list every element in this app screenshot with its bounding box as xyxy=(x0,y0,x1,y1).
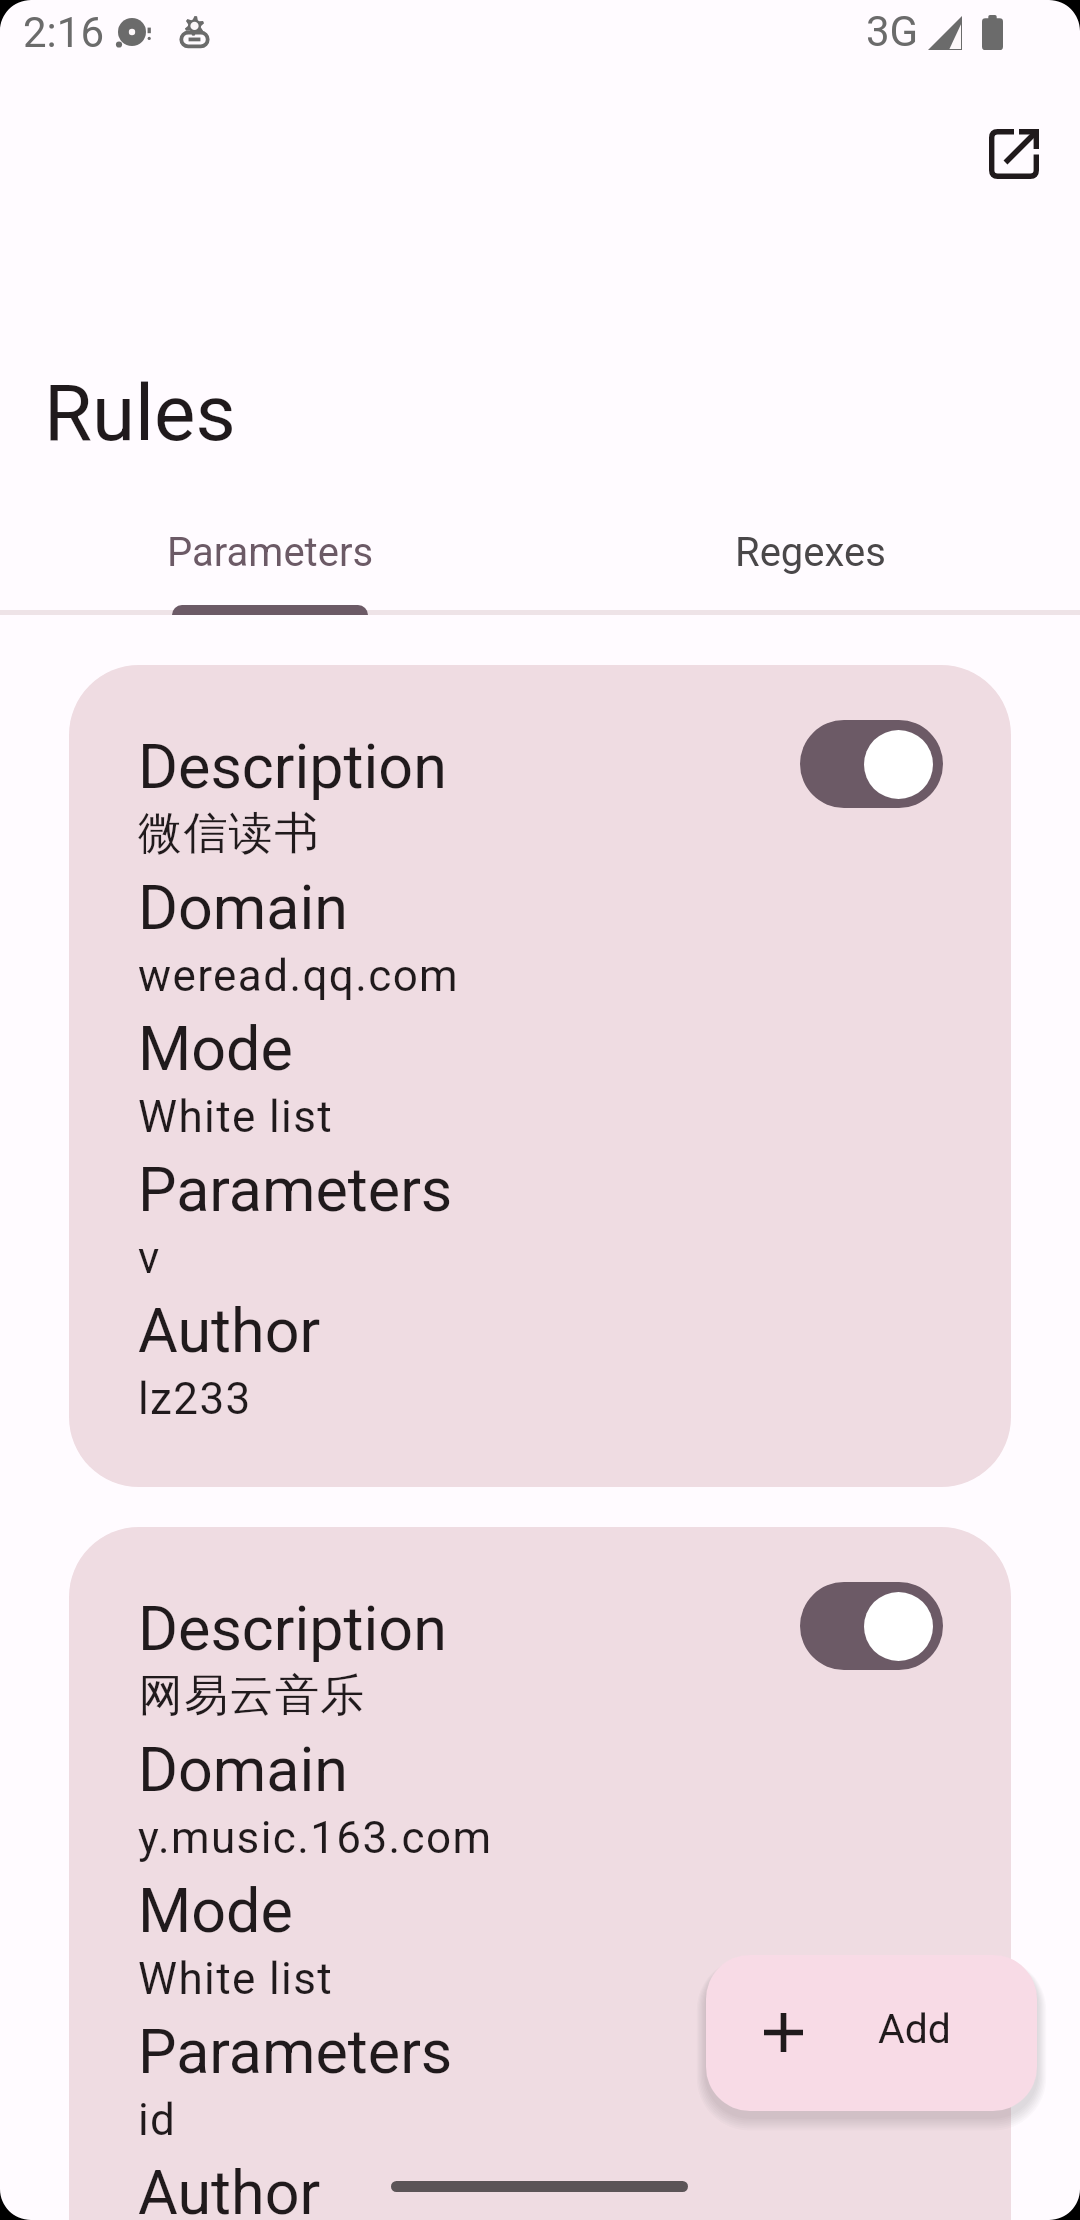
staticText: Description xyxy=(138,1583,447,1667)
button[interactable]: Add xyxy=(706,1955,1037,2111)
staticText: Mode xyxy=(138,1003,293,1087)
button[interactable]: Enable rule xyxy=(800,720,943,808)
staticText: Domain xyxy=(138,862,349,946)
button[interactable]: Open in new window xyxy=(954,94,1074,214)
button[interactable]: Enable rule xyxy=(800,1582,943,1670)
button[interactable]: Parameters xyxy=(0,480,540,615)
button[interactable]: Description xyxy=(69,1527,1011,2220)
staticText: Rules xyxy=(44,368,236,459)
staticText: 网易云音乐 xyxy=(138,1667,365,1724)
staticText: Domain xyxy=(138,1724,349,1808)
staticText: 2:16 xyxy=(23,8,104,57)
staticText: y.music.163.com xyxy=(138,1808,493,1865)
staticText: Add xyxy=(878,2005,951,2053)
staticText: Parameters xyxy=(138,1144,453,1228)
staticText: Author xyxy=(138,2147,321,2220)
staticText: Author xyxy=(138,1285,321,1369)
staticText: 3G xyxy=(866,7,919,56)
button[interactable]: Regexes xyxy=(540,480,1080,615)
staticText: Regexes xyxy=(735,529,886,576)
staticText: White list xyxy=(138,1087,334,1144)
staticText: 微信读书 xyxy=(138,805,320,862)
staticText: Parameters xyxy=(138,2006,453,2090)
staticText: White list xyxy=(138,1949,334,2006)
button[interactable]: Description xyxy=(69,665,1011,1487)
staticText: weread.qq.com xyxy=(138,946,460,1003)
staticText: id xyxy=(138,2090,177,2147)
staticText: v xyxy=(138,1228,161,1285)
staticText: Description xyxy=(138,721,447,805)
staticText: lz233 xyxy=(138,1369,252,1426)
staticText: Parameters xyxy=(167,529,374,576)
staticText: Mode xyxy=(138,1865,293,1949)
